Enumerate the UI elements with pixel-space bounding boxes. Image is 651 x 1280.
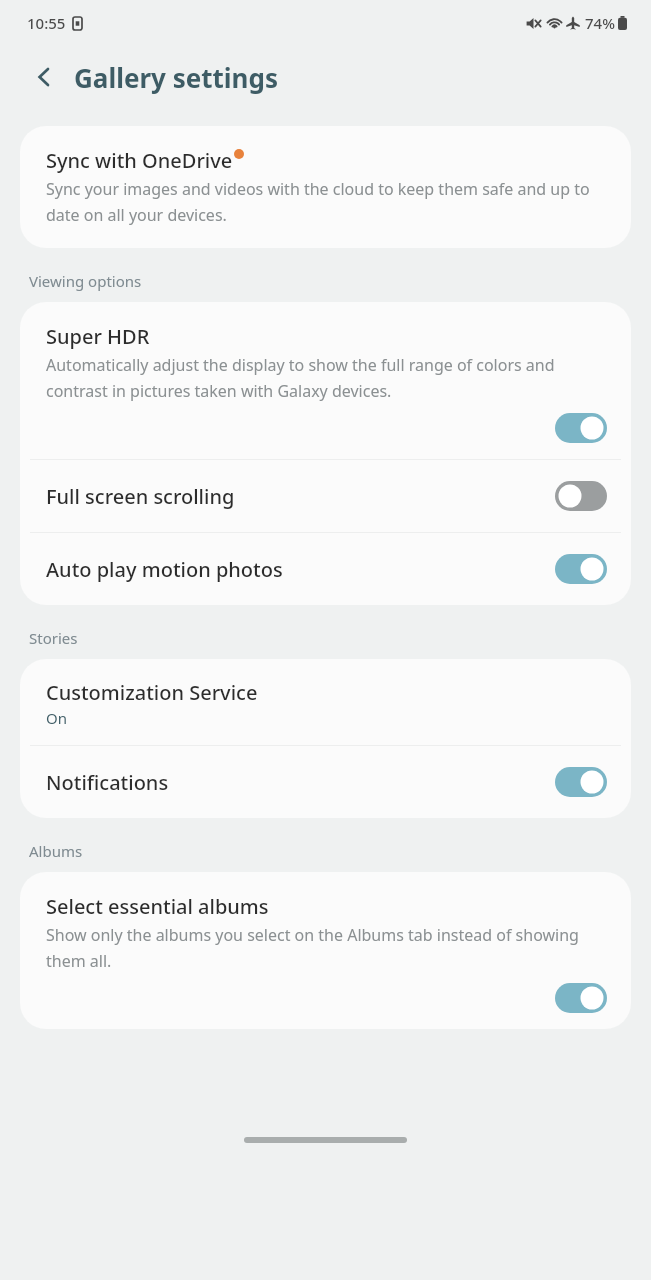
- staticText: 74%: [585, 13, 615, 33]
- button[interactable]: Sync with OneDrive: [20, 126, 631, 248]
- staticText: Viewing options: [29, 271, 142, 291]
- staticText: Sync your images and videos with the clo…: [46, 178, 607, 226]
- staticText: On: [46, 708, 67, 728]
- button[interactable]: Auto play motion photos: [20, 533, 631, 605]
- staticText: Select essential albums: [46, 893, 269, 920]
- button[interactable]: Customization Service: [20, 659, 631, 745]
- staticText: Sync with OneDrive: [46, 147, 233, 174]
- staticText: Albums: [29, 841, 83, 861]
- staticText: Customization Service: [46, 679, 258, 706]
- button[interactable]: Select essential albums: [20, 872, 631, 1029]
- staticText: Auto play motion photos: [46, 556, 283, 583]
- button[interactable]: Super HDR: [20, 302, 631, 459]
- button[interactable]: Switch on: [555, 767, 607, 797]
- staticText: Gallery settings: [74, 60, 278, 95]
- staticText: Super HDR: [46, 323, 150, 350]
- button[interactable]: Full screen scrolling: [20, 460, 631, 532]
- staticText: Stories: [29, 628, 78, 648]
- button[interactable]: Notifications: [20, 746, 631, 818]
- button[interactable]: Switch on: [555, 554, 607, 584]
- staticText: Show only the albums you select on the A…: [46, 924, 607, 972]
- staticText: 10:55: [27, 13, 66, 33]
- button[interactable]: Switch on: [555, 413, 607, 443]
- button[interactable]: Switch off: [555, 481, 607, 511]
- staticText: Full screen scrolling: [46, 483, 235, 510]
- button[interactable]: Switch on: [555, 983, 607, 1013]
- staticText: Automatically adjust the display to show…: [46, 354, 607, 402]
- button[interactable]: Back: [22, 55, 66, 99]
- staticText: Notifications: [46, 769, 169, 796]
